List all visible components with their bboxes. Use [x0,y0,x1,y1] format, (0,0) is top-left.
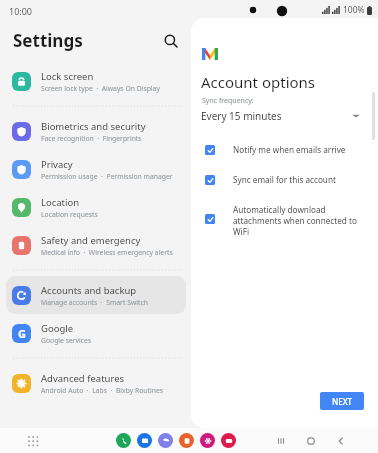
button[interactable]: Privacy [6,150,186,188]
button[interactable]: Notify me when emails arrive [201,144,376,155]
button[interactable]: Lock screen [6,62,186,100]
staticText: Google services [41,336,92,345]
button[interactable]: Location [6,188,186,226]
staticText: Location [41,196,80,209]
button[interactable]: Advanced features [6,364,186,402]
button[interactable]: Every 15 minutes [197,106,372,126]
button[interactable]: Sync email for this account [201,174,376,185]
staticText: Automatically download attachments when … [233,204,357,237]
staticText: Advanced features [41,372,125,385]
staticText: 100% [343,4,365,16]
staticText: Permission usage · Permission manager [41,172,173,181]
staticText: Account options [201,72,316,92]
button[interactable]: Search settings [159,29,183,53]
staticText: Location requests [41,210,98,219]
button[interactable]: App 4 [179,433,194,448]
staticText: Privacy [41,158,73,171]
staticText: Manage accounts · Smart Switch [41,298,148,307]
button[interactable]: App 6 [221,433,236,448]
staticText: NEXT [332,396,353,407]
staticText: Medical info · Wireless emergency alerts [41,248,173,257]
button[interactable]: Safety and emergency [6,226,186,264]
button[interactable]: back [332,432,349,449]
button[interactable]: App 3 [158,433,173,448]
button[interactable]: G [6,314,186,352]
staticText: Every 15 minutes [201,109,282,123]
staticText: Face recognition · Fingerprints [41,134,142,143]
button[interactable]: App 1 [116,433,131,448]
button[interactable]: Accounts and backup [6,276,186,314]
button[interactable]: Biometrics and security [6,112,186,150]
staticText: 10:00 [9,5,33,17]
staticText: Biometrics and security [41,120,146,133]
staticText: G [18,326,26,341]
staticText: Notify me when emails arrive [233,144,346,155]
staticText: Settings [13,29,83,52]
staticText: Accounts and backup [41,284,137,297]
button[interactable]: App 5 [200,433,215,448]
button[interactable]: NEXT [320,392,364,410]
staticText: Sync email for this account [233,174,336,185]
staticText: Screen lock type · Always On Display [41,84,160,93]
staticText: Lock screen [41,70,94,83]
staticText: Google [41,322,74,335]
button[interactable]: recents [272,432,289,449]
button[interactable]: home [302,432,319,449]
button[interactable]: App 2 [137,433,152,448]
staticText: Sync frequency: [202,96,254,106]
button[interactable]: Automatically download attachments when … [201,204,376,237]
staticText: Safety and emergency [41,234,141,247]
staticText: Android Auto · Labs · Bixby Routines [41,386,163,395]
button[interactable]: All apps [25,433,40,448]
